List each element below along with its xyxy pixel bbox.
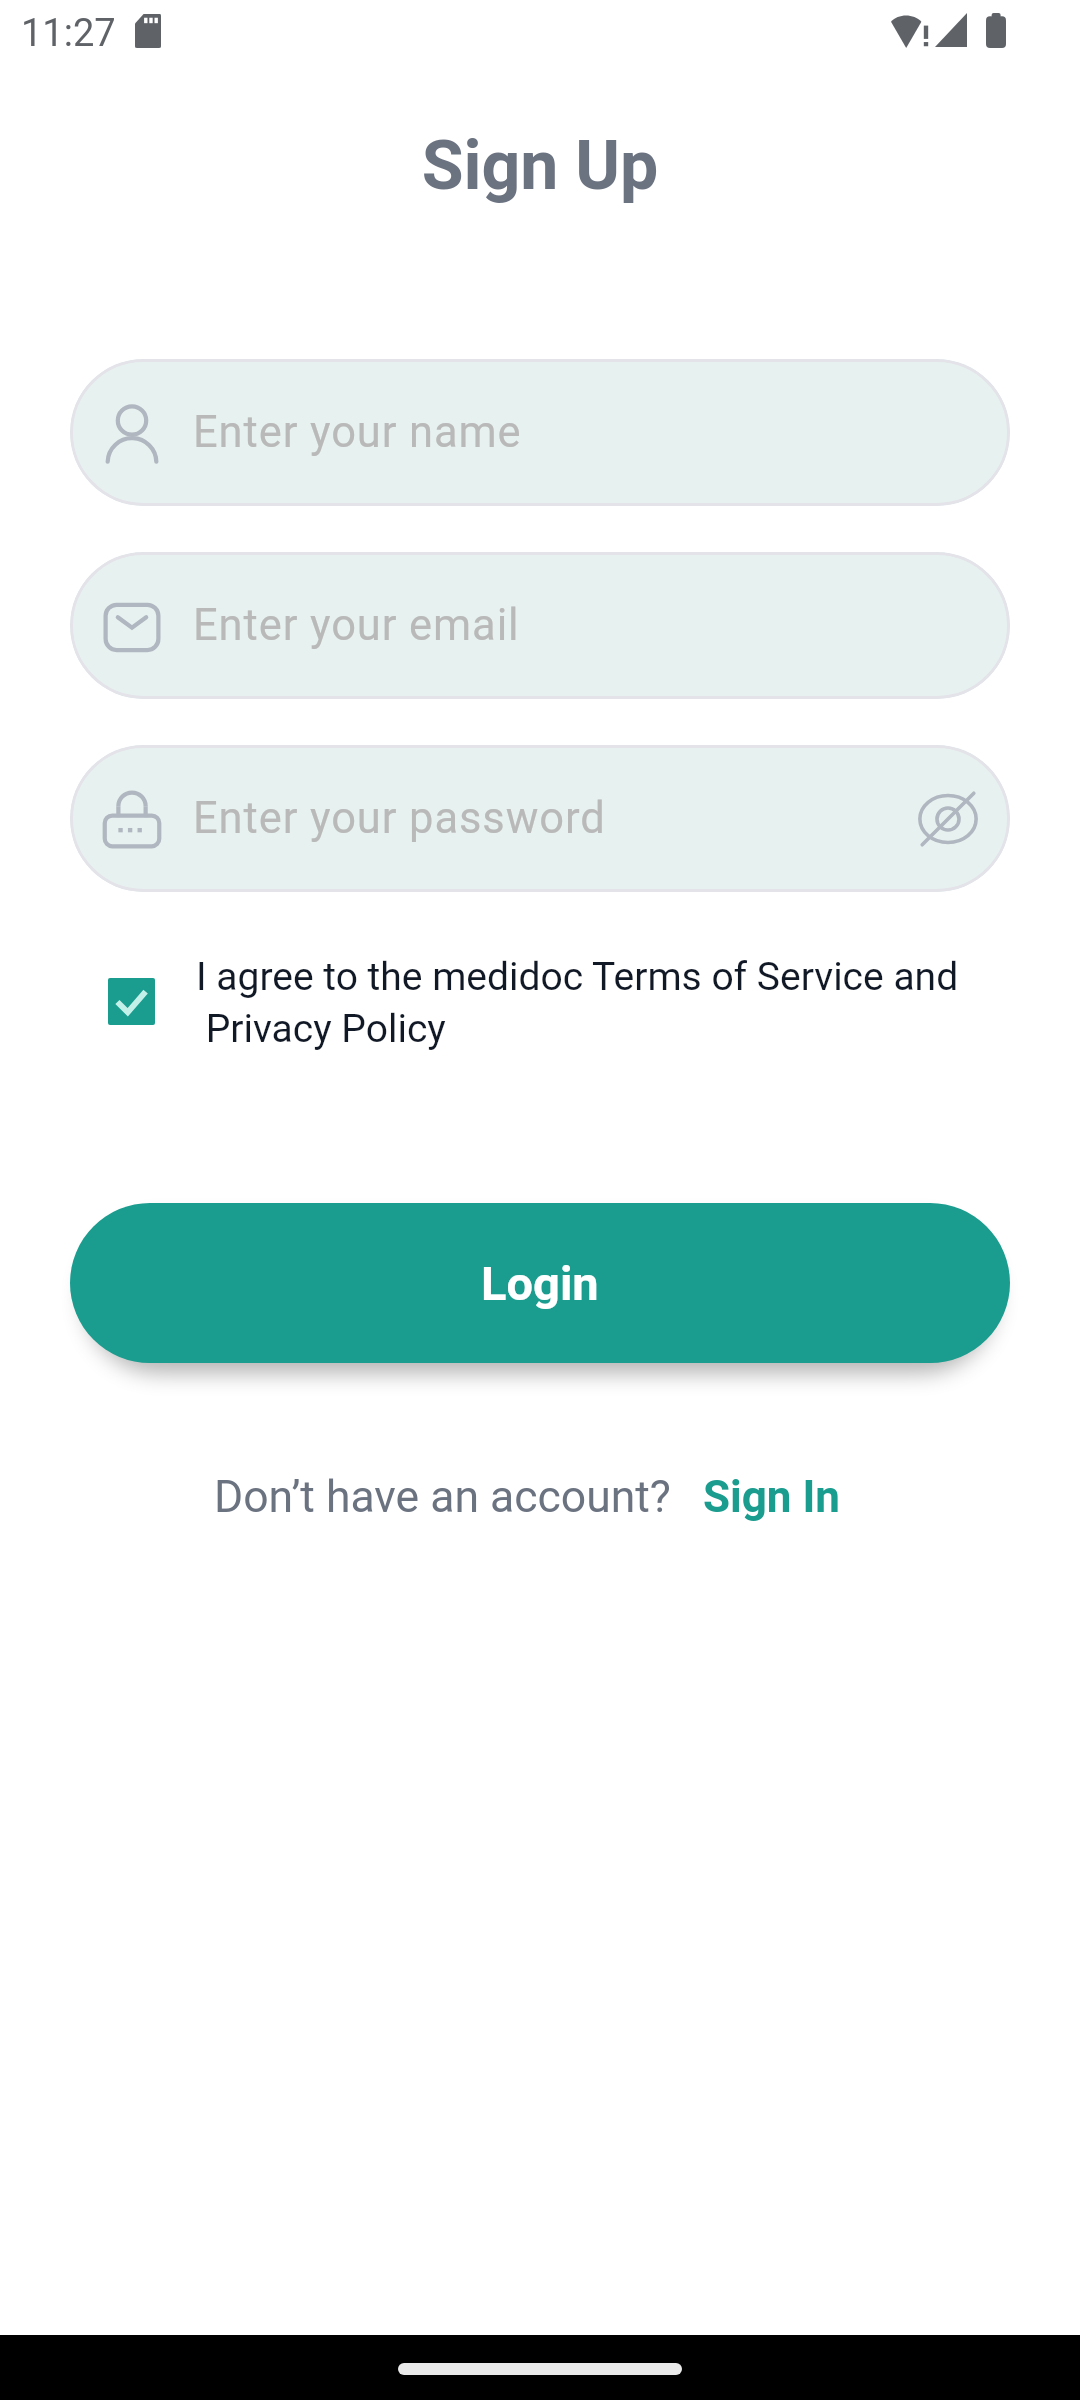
staticText: Sign In (703, 1471, 840, 1523)
staticText: Sign Up (0, 126, 1080, 206)
button[interactable]: I agree to the medidoc Terms of Service … (108, 954, 1010, 1051)
button[interactable]: Enter your email (70, 552, 1010, 699)
staticText: Don’t have an account? (214, 1471, 671, 1523)
button[interactable]: Enter your name (70, 359, 1010, 506)
button[interactable]: Sign In (699, 1471, 844, 1523)
staticText: 11:27 (21, 11, 116, 56)
button[interactable]: Login (70, 1203, 1010, 1363)
staticText: I agree to the medidoc Terms of Service … (196, 954, 959, 1051)
staticText: Enter your name (193, 407, 522, 458)
staticText: Enter your email (193, 600, 520, 651)
button[interactable]: Enter your password (70, 745, 1010, 892)
button[interactable]: Show password (919, 790, 977, 848)
staticText: Enter your password (193, 793, 606, 844)
staticText: Login (481, 1256, 599, 1311)
